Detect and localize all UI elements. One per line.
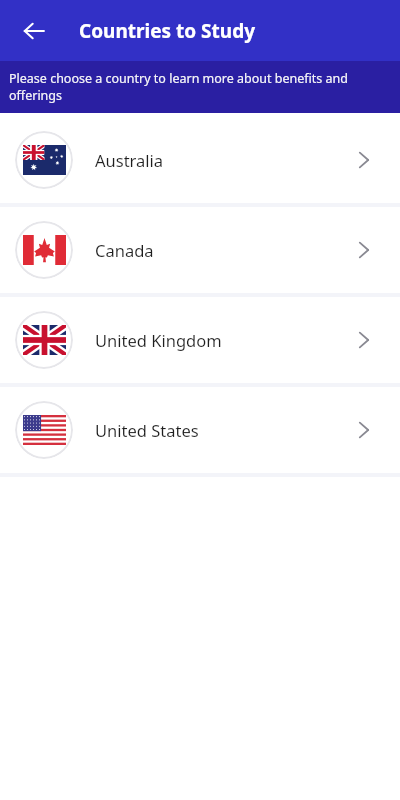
staticText: United States bbox=[95, 419, 199, 441]
button[interactable]: United States bbox=[8, 387, 392, 473]
staticText: Please choose a country to learn more ab… bbox=[9, 70, 388, 104]
button[interactable]: Back bbox=[12, 9, 56, 53]
staticText: Australia bbox=[95, 149, 164, 171]
staticText: Countries to Study bbox=[79, 18, 255, 44]
button[interactable]: United Kingdom bbox=[8, 297, 392, 383]
button[interactable]: Canada bbox=[8, 207, 392, 293]
staticText: Canada bbox=[95, 239, 154, 261]
staticText: United Kingdom bbox=[95, 329, 222, 351]
button[interactable]: Australia bbox=[8, 117, 392, 203]
